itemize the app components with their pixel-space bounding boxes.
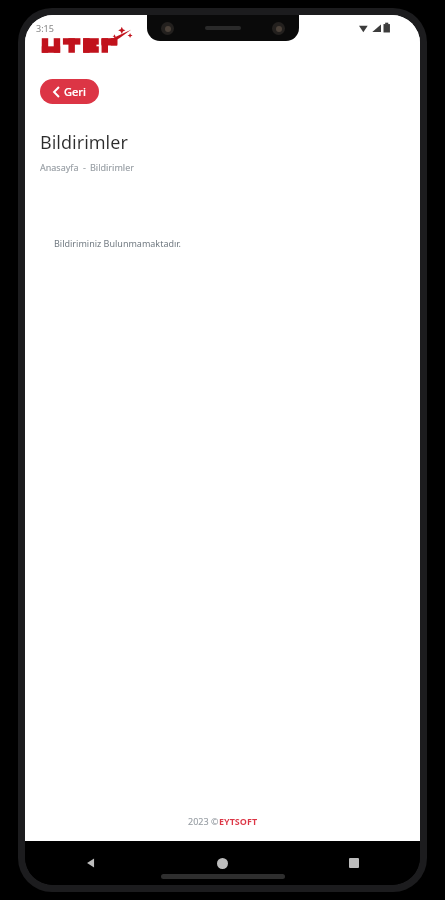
button[interactable]: Recent apps — [288, 841, 420, 885]
staticText: Anasayfa — [40, 161, 79, 173]
staticText: Bildirimler — [90, 161, 134, 173]
staticText: Geri — [64, 84, 86, 99]
staticText: 3:15 — [36, 22, 54, 34]
button[interactable]: Geri — [40, 79, 99, 104]
button[interactable]: Home — [156, 841, 288, 885]
staticText: 2023 © — [188, 815, 219, 827]
staticText: - — [83, 161, 86, 173]
button[interactable]: Back — [25, 841, 156, 885]
staticText: Bildiriminiz Bulunmamaktadır. — [54, 237, 182, 249]
staticText: EYTSOFT — [219, 815, 258, 827]
staticText: Bildirimler — [40, 130, 128, 155]
